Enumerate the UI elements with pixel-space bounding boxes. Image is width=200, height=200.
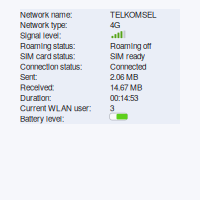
staticText: Received: <box>20 81 54 93</box>
staticText: Connected <box>110 60 146 72</box>
staticText: SIM ready <box>110 50 145 62</box>
staticText: Roaming off <box>110 40 151 51</box>
staticText: 2.06 MB <box>110 71 138 82</box>
staticText: SIM card status: <box>20 50 75 62</box>
staticText: Network type: <box>20 19 67 30</box>
staticText: Current WLAN user: <box>20 102 91 114</box>
staticText: TELKOMSEL <box>110 8 156 20</box>
staticText: Roaming status: <box>20 40 75 51</box>
staticText: Duration: <box>20 92 51 103</box>
staticText: Battery level: <box>20 112 64 124</box>
staticText: Signal level: <box>20 29 61 41</box>
staticText: 00:14:53 <box>110 92 138 103</box>
staticText: Sent: <box>20 71 37 82</box>
staticText: 4G <box>110 19 120 30</box>
staticText: 3 <box>110 102 114 114</box>
staticText: Network name: <box>20 8 72 20</box>
staticText: Connection status: <box>20 60 82 72</box>
staticText: 14.67 MB <box>110 81 142 93</box>
